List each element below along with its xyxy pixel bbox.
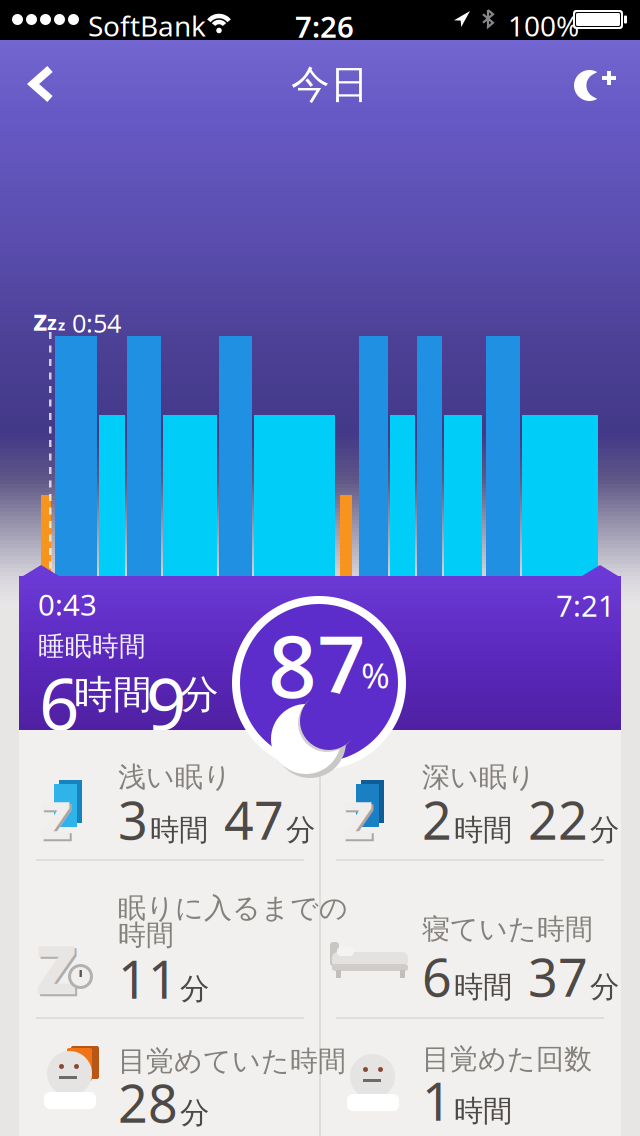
staticText: 時間 xyxy=(454,969,512,1005)
staticText: 寝ていた時間 xyxy=(422,912,593,946)
staticText: 28 xyxy=(118,1068,178,1136)
staticText: 0:43 xyxy=(38,585,97,624)
staticText: 1 xyxy=(422,1066,452,1135)
staticText: 分 xyxy=(180,971,209,1007)
staticText: 7:21 xyxy=(556,586,615,625)
staticText: 2 xyxy=(422,785,452,854)
staticText: 22 xyxy=(514,785,588,854)
staticText: 分 xyxy=(180,671,219,718)
staticText: 時間 xyxy=(118,918,174,952)
staticText: 時間 xyxy=(150,812,208,848)
staticText: 0:54 xyxy=(72,306,121,340)
staticText: 今日 xyxy=(291,61,369,108)
staticText: 時間 xyxy=(74,671,152,718)
staticText: 6 xyxy=(422,942,452,1011)
staticText: 3 xyxy=(118,785,148,854)
staticText: Z xyxy=(42,788,73,855)
button[interactable] xyxy=(574,67,618,103)
staticText: Z xyxy=(342,786,373,853)
staticText: Z xyxy=(36,924,77,1012)
staticText: 7:26 xyxy=(295,7,354,46)
staticText: SoftBank xyxy=(88,7,206,44)
staticText: 時間 xyxy=(454,812,512,848)
staticText: 分 xyxy=(590,969,619,1005)
staticText: 睡眠時間 xyxy=(38,630,146,663)
staticText: Z xyxy=(38,926,79,1014)
staticText: z xyxy=(58,315,65,334)
staticText: z xyxy=(33,300,47,339)
staticText: Z xyxy=(40,786,71,853)
staticText: 眠りに入るまでの xyxy=(118,891,348,925)
staticText: 100% xyxy=(508,7,579,44)
staticText: Z xyxy=(344,788,375,855)
staticText: 6 xyxy=(39,656,79,750)
staticText: 87 xyxy=(268,608,366,721)
staticText: 47 xyxy=(210,785,284,854)
staticText: 深い眠り xyxy=(422,760,536,794)
staticText: 37 xyxy=(514,942,588,1011)
staticText: 目覚めていた時間 xyxy=(118,1044,346,1078)
staticText: 分 xyxy=(180,1095,209,1131)
staticText: 9 xyxy=(146,656,186,750)
staticText: 時間 xyxy=(454,1093,512,1129)
staticText: 11 xyxy=(118,944,178,1013)
staticText: 分 xyxy=(286,812,315,848)
button[interactable] xyxy=(33,69,50,99)
staticText: 浅い眠り xyxy=(118,760,232,794)
staticText: % xyxy=(361,652,390,698)
staticText: 目覚めた回数 xyxy=(422,1042,592,1076)
staticText: z xyxy=(47,309,57,336)
staticText: 分 xyxy=(590,812,619,848)
